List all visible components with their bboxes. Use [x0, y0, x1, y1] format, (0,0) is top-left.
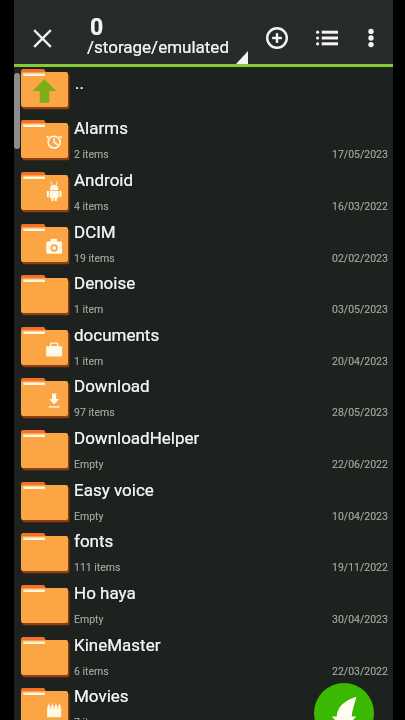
staticText: 4 items [74, 200, 109, 212]
button[interactable]: More options [349, 16, 393, 60]
staticText: 10/04/2023 [332, 510, 388, 522]
button[interactable]: List view [305, 16, 349, 60]
staticText: 111 items [74, 561, 121, 573]
staticText: 16/03/2022 [332, 200, 388, 212]
staticText: 6 items [74, 665, 109, 677]
staticText: Easy voice [74, 480, 154, 500]
staticText: 03/05/2023 [332, 303, 388, 315]
staticText: 19 items [74, 252, 115, 264]
button[interactable]: Easy voice [14, 480, 393, 532]
staticText: 30/04/2023 [332, 613, 388, 625]
button[interactable]: .. [14, 67, 393, 119]
staticText: fonts [74, 531, 114, 551]
staticText: 22/03/2022 [332, 665, 388, 677]
staticText: 0 [90, 14, 104, 41]
staticText: 2 items [74, 148, 109, 160]
button[interactable]: Alarms [14, 118, 393, 170]
button[interactable]: documents [14, 325, 393, 377]
button[interactable]: fonts [14, 531, 393, 583]
button[interactable]: Ho haya [14, 583, 393, 635]
staticText: 22/06/2022 [332, 458, 388, 470]
staticText: /storage/emulated [87, 37, 229, 57]
staticText: Empty [74, 510, 104, 522]
button[interactable]: Add [255, 16, 299, 60]
staticText: 17/05/2023 [332, 148, 388, 160]
button[interactable]: Downloads [314, 683, 374, 720]
staticText: 1 item [74, 355, 104, 367]
staticText: Denoise [74, 273, 136, 293]
staticText: Android [74, 170, 134, 190]
staticText: 20/04/2023 [332, 355, 388, 367]
staticText: .. [75, 73, 84, 93]
staticText: Movies [74, 686, 129, 706]
staticText: DownloadHelper [74, 428, 200, 448]
staticText: Empty [74, 458, 104, 470]
button[interactable]: KineMaster [14, 635, 393, 687]
staticText: Ho haya [74, 583, 136, 603]
staticText: 7 items [74, 716, 109, 720]
button[interactable]: Download [14, 376, 393, 428]
button[interactable]: Android [14, 170, 393, 222]
staticText: KineMaster [74, 635, 161, 655]
staticText: 97 items [74, 406, 115, 418]
staticText: Empty [74, 613, 104, 625]
staticText: DCIM [74, 222, 116, 242]
staticText: 02/02/2023 [332, 252, 388, 264]
staticText: Download [74, 376, 150, 396]
staticText: documents [74, 325, 160, 345]
button[interactable]: DCIM [14, 222, 393, 274]
staticText: 19/11/2022 [332, 561, 388, 573]
button[interactable]: Close [20, 16, 64, 60]
button[interactable]: DownloadHelper [14, 428, 393, 480]
staticText: Alarms [74, 118, 128, 138]
button[interactable]: Movies [14, 686, 393, 720]
button[interactable]: 0 [84, 8, 264, 60]
button[interactable]: Denoise [14, 273, 393, 325]
staticText: 28/05/2023 [332, 406, 388, 418]
staticText: 1 item [74, 303, 104, 315]
